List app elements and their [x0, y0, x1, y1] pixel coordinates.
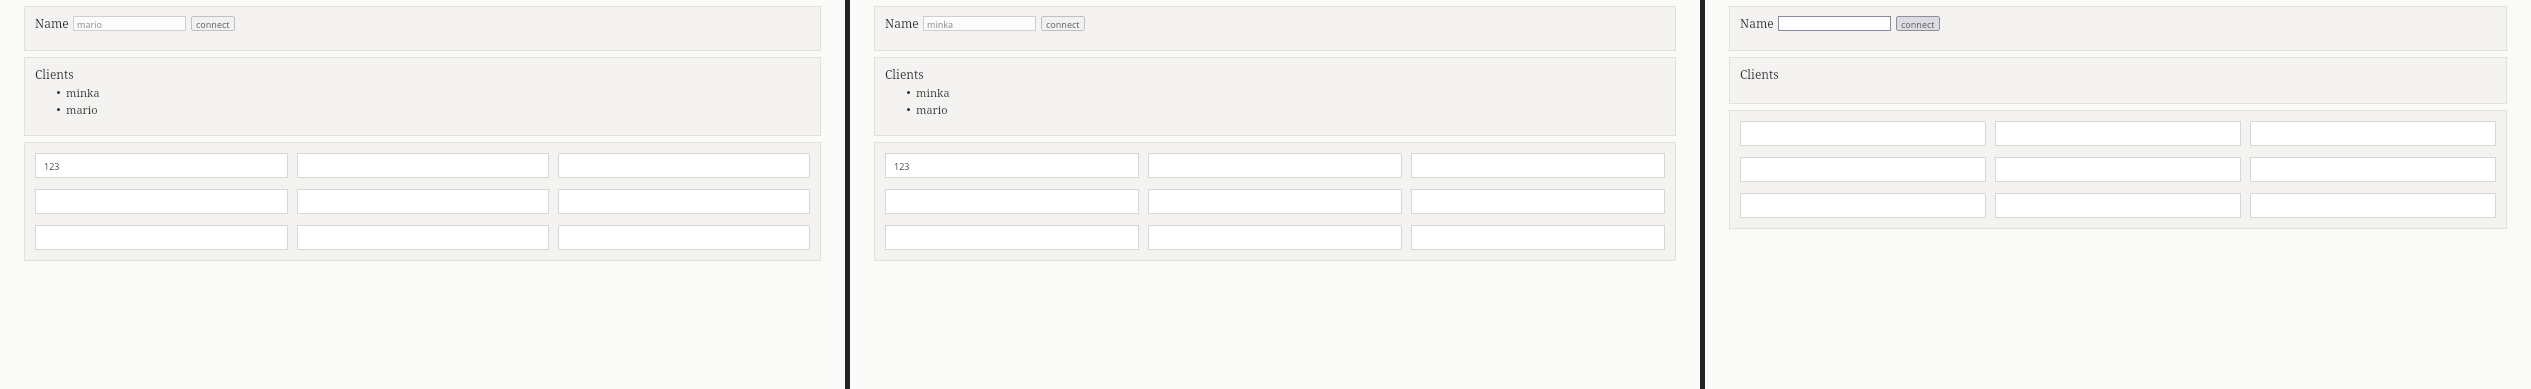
- button[interactable]: empty cell: [1148, 225, 1402, 250]
- staticText: Clients: [1740, 66, 1779, 82]
- staticText: minka: [916, 85, 950, 100]
- staticText: minka: [927, 18, 954, 30]
- button[interactable]: empty cell: [1411, 225, 1665, 250]
- staticText: Name: [885, 15, 919, 31]
- staticText: connect: [1046, 18, 1080, 30]
- staticText: Clients: [35, 66, 74, 82]
- button[interactable]: empty cell: [2250, 121, 2496, 146]
- button[interactable]: Name input: [1778, 16, 1891, 31]
- button[interactable]: empty cell: [1148, 189, 1402, 214]
- button[interactable]: empty cell: [297, 189, 549, 214]
- button[interactable]: empty cell: [297, 153, 549, 178]
- button[interactable]: connect: [1041, 16, 1085, 31]
- button[interactable]: empty cell: [35, 189, 288, 214]
- button[interactable]: Name input: [73, 16, 186, 31]
- button[interactable]: empty cell: [1148, 153, 1402, 178]
- button[interactable]: connect: [191, 16, 235, 31]
- button[interactable]: Name input: [923, 16, 1036, 31]
- button[interactable]: empty cell: [2250, 193, 2496, 218]
- staticText: connect: [196, 18, 230, 30]
- staticText: 123: [44, 160, 60, 172]
- button[interactable]: connect: [1896, 16, 1940, 31]
- button[interactable]: empty cell: [1995, 157, 2241, 182]
- button[interactable]: empty cell: [1411, 153, 1665, 178]
- button[interactable]: empty cell: [35, 225, 288, 250]
- staticText: mario: [77, 18, 102, 30]
- button[interactable]: empty cell: [885, 225, 1139, 250]
- staticText: mario: [916, 102, 948, 117]
- staticText: connect: [1901, 18, 1935, 30]
- button[interactable]: empty cell: [1411, 189, 1665, 214]
- staticText: Name: [1740, 15, 1774, 31]
- button[interactable]: empty cell: [297, 225, 549, 250]
- staticText: Clients: [885, 66, 924, 82]
- button[interactable]: empty cell: [885, 189, 1139, 214]
- button[interactable]: 123: [885, 153, 1139, 178]
- button[interactable]: empty cell: [558, 225, 810, 250]
- staticText: minka: [66, 85, 100, 100]
- button[interactable]: empty cell: [1740, 193, 1986, 218]
- button[interactable]: empty cell: [1740, 121, 1986, 146]
- staticText: 123: [894, 160, 910, 172]
- staticText: mario: [66, 102, 98, 117]
- button[interactable]: empty cell: [1995, 193, 2241, 218]
- button[interactable]: empty cell: [2250, 157, 2496, 182]
- button[interactable]: empty cell: [558, 189, 810, 214]
- button[interactable]: 123: [35, 153, 288, 178]
- button[interactable]: empty cell: [558, 153, 810, 178]
- button[interactable]: empty cell: [1995, 121, 2241, 146]
- staticText: Name: [35, 15, 69, 31]
- button[interactable]: empty cell: [1740, 157, 1986, 182]
